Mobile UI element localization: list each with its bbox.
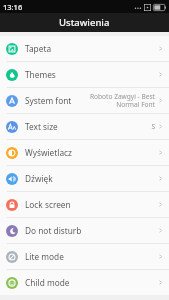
staticText: 13:16 <box>3 2 23 12</box>
button[interactable]: Text size <box>0 114 169 139</box>
other: Open Themes <box>157 70 165 79</box>
staticText: Text size <box>25 121 58 132</box>
staticText: Lite mode <box>25 251 64 262</box>
other: Open Lock screen <box>157 200 165 209</box>
staticText: Themes <box>25 69 56 80</box>
button[interactable]: Tapeta <box>0 36 169 61</box>
button[interactable]: Lite mode <box>0 244 169 269</box>
button[interactable]: Lock screen <box>0 192 169 217</box>
staticText: System font <box>25 95 72 106</box>
other: Open Child mode <box>157 278 165 287</box>
button[interactable]: Wyświetlacz <box>0 140 169 165</box>
other: Open Dźwięk <box>157 174 165 183</box>
button[interactable]: Do not disturb <box>0 218 169 243</box>
button[interactable]: Themes <box>0 62 169 87</box>
other: Open Lite mode <box>157 252 165 261</box>
button[interactable]: System font <box>0 88 169 113</box>
staticText: Tapeta <box>25 43 52 54</box>
other: Open Do not disturb <box>157 226 165 235</box>
button[interactable]: Dźwięk <box>0 166 169 191</box>
staticText: Do not disturb <box>25 225 82 236</box>
other: Open System font <box>157 96 165 105</box>
staticText: Lock screen <box>25 199 71 210</box>
staticText: Ustawienia <box>59 16 110 29</box>
staticText: Dźwięk <box>25 173 53 184</box>
other: Open Wyświetlacz <box>157 148 165 157</box>
other: Open Tapeta <box>157 44 165 53</box>
staticText: Roboto Zawgyi - Best Normal Font <box>89 92 155 109</box>
staticText: Wyświetlacz <box>25 147 72 158</box>
staticText: Child mode <box>25 277 70 288</box>
button[interactable]: Child mode <box>0 270 169 295</box>
staticText: S <box>151 122 155 131</box>
other: Open Text size <box>157 122 165 131</box>
